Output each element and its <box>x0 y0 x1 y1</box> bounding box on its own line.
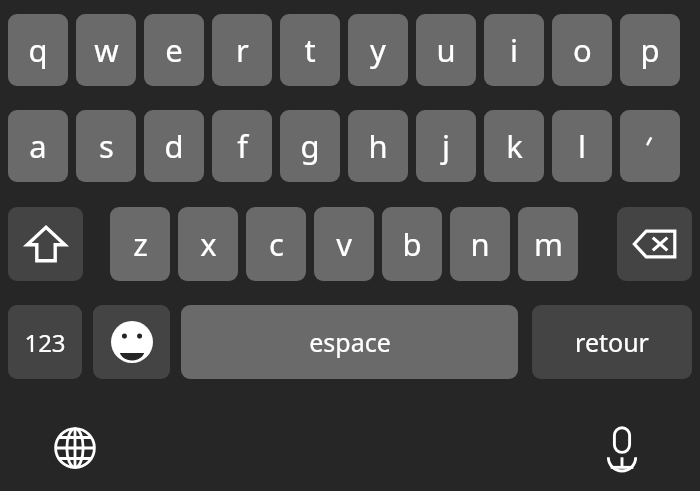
staticText: p <box>640 29 660 71</box>
staticText: retour <box>575 325 649 359</box>
staticText: g <box>300 125 320 167</box>
staticText: o <box>573 29 592 71</box>
button[interactable]: e <box>144 14 204 86</box>
button[interactable]: c <box>246 207 306 281</box>
button[interactable]: espace <box>181 305 518 379</box>
staticText: i <box>510 29 518 71</box>
staticText: v <box>336 223 352 265</box>
staticText: z <box>133 223 148 265</box>
staticText: b <box>402 223 422 265</box>
button[interactable]: k <box>484 110 544 182</box>
staticText: x <box>200 223 217 265</box>
staticText: w <box>94 29 119 71</box>
button[interactable]: Emoji <box>93 305 170 379</box>
button[interactable]: p <box>620 14 680 86</box>
button[interactable]: Change keyboard language <box>45 418 105 478</box>
button[interactable]: g <box>280 110 340 182</box>
staticText: d <box>164 125 184 167</box>
button[interactable]: i <box>484 14 544 86</box>
button[interactable]: n <box>450 207 510 281</box>
button[interactable]: y <box>348 14 408 86</box>
button[interactable]: w <box>76 14 136 86</box>
staticText: m <box>534 223 563 265</box>
button[interactable]: o <box>552 14 612 86</box>
button[interactable]: 123 <box>8 305 82 379</box>
staticText: 123 <box>24 326 66 359</box>
staticText: e <box>165 29 183 71</box>
button[interactable]: v <box>314 207 374 281</box>
button[interactable]: Shift <box>8 207 83 281</box>
staticText: t <box>304 29 316 71</box>
staticText: c <box>269 223 284 265</box>
button[interactable]: Dictation <box>592 418 652 478</box>
staticText: n <box>470 223 490 265</box>
staticText: k <box>506 125 523 167</box>
staticText: a <box>29 125 47 167</box>
button[interactable]: b <box>382 207 442 281</box>
button[interactable]: Apostrophe <box>620 110 680 182</box>
button[interactable]: u <box>416 14 476 86</box>
button[interactable]: r <box>212 14 272 86</box>
staticText: s <box>99 125 114 167</box>
button[interactable]: retour <box>532 305 692 379</box>
staticText: q <box>28 29 48 71</box>
button[interactable]: d <box>144 110 204 182</box>
button[interactable]: z <box>110 207 170 281</box>
button[interactable]: Backspace <box>617 207 692 281</box>
staticText: h <box>368 125 388 167</box>
staticText: u <box>436 29 456 71</box>
staticText: l <box>578 125 586 167</box>
button[interactable]: f <box>212 110 272 182</box>
button[interactable]: t <box>280 14 340 86</box>
button[interactable]: q <box>8 14 68 86</box>
button[interactable]: m <box>518 207 578 281</box>
button[interactable]: h <box>348 110 408 182</box>
button[interactable]: l <box>552 110 612 182</box>
staticText: espace <box>309 325 391 359</box>
button[interactable]: j <box>416 110 476 182</box>
staticText: y <box>370 29 386 71</box>
staticText: j <box>442 125 450 167</box>
button[interactable]: a <box>8 110 68 182</box>
staticText: r <box>236 29 249 71</box>
button[interactable]: x <box>178 207 238 281</box>
staticText: f <box>237 125 248 167</box>
button[interactable]: s <box>76 110 136 182</box>
